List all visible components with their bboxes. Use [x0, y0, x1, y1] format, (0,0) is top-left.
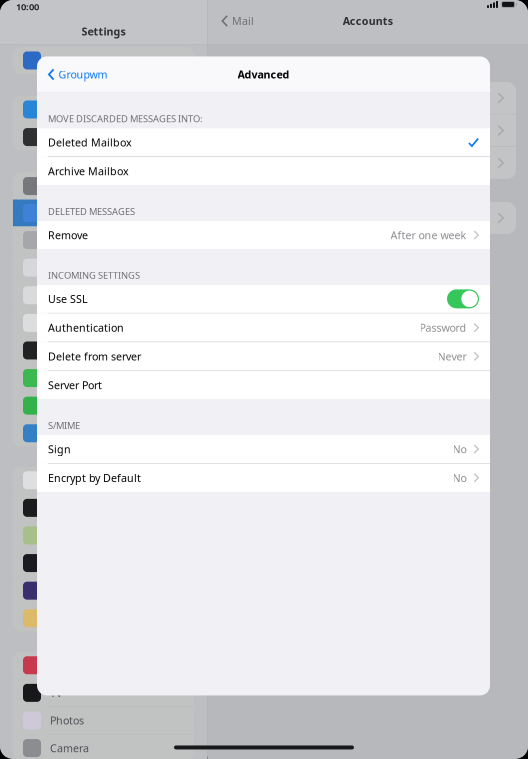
staticText: 10:00 [16, 0, 39, 13]
staticText: Mail [232, 14, 254, 28]
button[interactable]: Archive Mailbox [37, 157, 490, 185]
staticText: Accounts [343, 14, 393, 28]
staticText: Contacts [50, 233, 94, 247]
staticText: Archive Mailbox [48, 164, 129, 178]
staticText: No [452, 442, 466, 456]
staticText: Reminders [50, 316, 105, 330]
staticText: Remove [48, 228, 88, 242]
staticText: Use SSL [48, 292, 88, 306]
staticText: S/MIME [48, 419, 80, 431]
button[interactable]: Delete from server [37, 342, 490, 370]
staticText: Privacy [50, 53, 84, 68]
staticText: Never [437, 349, 466, 363]
staticText: Passwords [50, 179, 102, 193]
staticText: Deleted Mailbox [48, 135, 132, 149]
button[interactable]: Authentication [37, 314, 490, 342]
staticText: Camera [50, 741, 89, 755]
button[interactable]: Sign [37, 435, 490, 463]
staticText: News [50, 473, 77, 487]
staticText: Encrypt by Default [48, 471, 141, 485]
button[interactable]: Use SSL [37, 285, 490, 313]
staticText: App Store [50, 102, 100, 117]
staticText: No [452, 471, 466, 485]
staticText: Delete from server [48, 349, 141, 363]
button[interactable]: Encrypt by Default [37, 464, 490, 492]
staticText: Wallet [50, 130, 82, 144]
staticText: Sign [48, 442, 71, 456]
staticText: Calendar [50, 261, 96, 275]
staticText: TV [50, 686, 62, 700]
button[interactable]: Deleted Mailbox [37, 128, 490, 156]
staticText: Safari [50, 426, 79, 440]
staticText: INCOMING SETTINGS [48, 269, 140, 281]
staticText: Photos [50, 713, 84, 728]
staticText: Authentication [48, 320, 124, 335]
staticText: Messages [50, 371, 100, 385]
staticText: Groupwm [58, 67, 107, 82]
button[interactable]: Server Port [37, 371, 490, 399]
staticText: Settings [81, 24, 125, 38]
button[interactable]: Groupwm [37, 56, 117, 92]
staticText: DELETED MESSAGES [48, 205, 135, 217]
staticText: Advanced [237, 67, 289, 82]
staticText: Mail [50, 206, 72, 220]
staticText: Notes [50, 288, 79, 302]
staticText: Server Port [48, 378, 102, 392]
staticText: Voice Memos [50, 343, 116, 358]
staticText: Password [419, 320, 466, 335]
staticText: After one week [390, 228, 466, 242]
button[interactable]: Remove [37, 221, 490, 249]
staticText: MOVE DISCARDED MESSAGES INTO: [48, 112, 203, 125]
